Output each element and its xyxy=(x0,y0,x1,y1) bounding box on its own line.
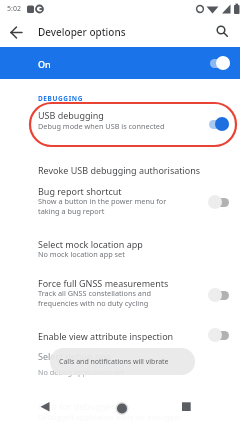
staticText: Track all GNSS constellations and xyxy=(38,288,151,298)
staticText: Debugged application waits for debugger xyxy=(38,412,181,422)
button[interactable] xyxy=(0,47,240,79)
button[interactable] xyxy=(0,180,240,222)
staticText: No debug application set xyxy=(38,367,124,377)
staticText: 5:02 xyxy=(7,4,21,14)
button[interactable] xyxy=(0,322,240,348)
button[interactable] xyxy=(209,56,230,70)
staticText: USB debugging xyxy=(38,109,104,121)
staticText: Select mock location app xyxy=(38,238,143,250)
staticText: taking a bug report xyxy=(38,206,105,216)
button[interactable] xyxy=(0,270,240,312)
button[interactable] xyxy=(208,288,229,302)
button[interactable] xyxy=(0,230,240,264)
button[interactable] xyxy=(0,18,240,47)
button[interactable] xyxy=(208,117,229,131)
staticText: Wait for debugger xyxy=(38,400,116,412)
button[interactable] xyxy=(0,102,240,144)
staticText: Show a button in the power menu for xyxy=(38,196,167,206)
staticText: Revoke USB debugging authorisations xyxy=(38,164,201,176)
staticText: DEBUGGING xyxy=(38,94,83,103)
button[interactable] xyxy=(0,152,240,180)
staticText: Enable view attribute inspection xyxy=(38,330,174,342)
button[interactable] xyxy=(208,195,229,209)
staticText: Select debug app xyxy=(38,350,112,362)
staticText: frequencies with no duty cycling xyxy=(38,298,149,308)
staticText: No mock location app set xyxy=(38,249,125,259)
staticText: Force full GNSS measurements xyxy=(38,277,169,289)
button[interactable] xyxy=(102,398,142,418)
staticText: Developer options xyxy=(38,25,126,39)
staticText: Calls and notifications will vibrate xyxy=(59,357,169,367)
staticText: Bug report shortcut xyxy=(38,185,122,197)
staticText: Debug mode when USB is connected xyxy=(38,121,165,131)
button[interactable] xyxy=(27,398,67,418)
button[interactable] xyxy=(166,398,206,418)
staticText: On xyxy=(38,58,51,70)
button[interactable] xyxy=(208,328,229,342)
